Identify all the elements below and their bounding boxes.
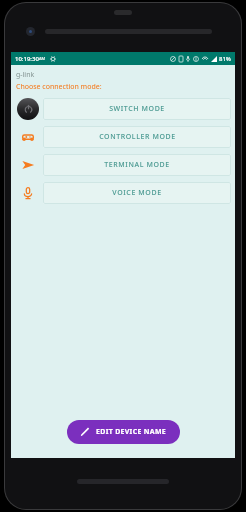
- button[interactable]: VOICE MODE: [43, 182, 231, 204]
- staticText: TERMINAL MODE: [104, 160, 170, 170]
- staticText: SWITCH MODE: [109, 104, 165, 114]
- staticText: 81%: [219, 55, 231, 63]
- other: Switch mode power: [17, 98, 39, 120]
- staticText: g-link: [16, 70, 35, 80]
- button[interactable]: Voice mode: [13, 179, 43, 207]
- button[interactable]: EDIT DEVICE NAME: [67, 420, 180, 444]
- button[interactable]: Switch mode power: [13, 95, 43, 123]
- staticText: EDIT DEVICE NAME: [96, 427, 167, 437]
- button[interactable]: Controller mode: [13, 123, 43, 151]
- other: Controller mode: [21, 130, 35, 144]
- button[interactable]: SWITCH MODE: [43, 98, 231, 120]
- other: Voice mode: [21, 186, 35, 200]
- staticText: AM: [39, 56, 46, 61]
- staticText: CONTROLLER MODE: [99, 132, 176, 142]
- button[interactable]: Terminal mode: [13, 151, 43, 179]
- staticText: VOICE MODE: [112, 188, 162, 198]
- button[interactable]: CONTROLLER MODE: [43, 126, 231, 148]
- other: Terminal mode: [21, 158, 35, 172]
- button[interactable]: TERMINAL MODE: [43, 154, 231, 176]
- staticText: Choose connection mode:: [16, 82, 102, 92]
- staticText: 10:19:30: [15, 55, 39, 63]
